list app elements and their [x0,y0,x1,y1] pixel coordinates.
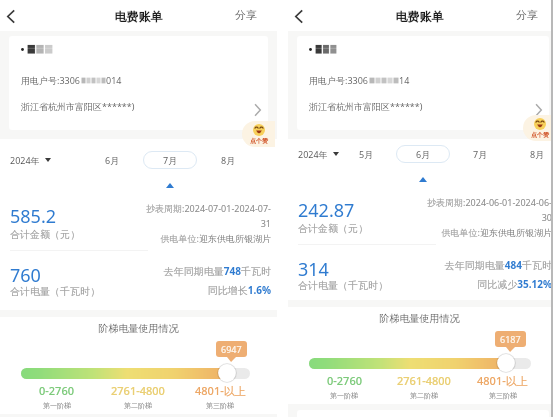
staticText: 分享 [235,8,257,22]
staticText: 用电户号:3306 [21,74,81,86]
staticText: 第三阶梯 [206,401,234,410]
staticText: 合计电量（千瓦时） [298,279,388,292]
button[interactable]: Usage level [496,353,516,373]
button[interactable]: 7月 [143,151,197,169]
staticText: 4801-以上 [477,373,528,388]
staticText: 分享 [516,8,538,22]
staticText: 6月 [416,148,431,160]
button[interactable]: 7月 [466,145,494,163]
staticText: 6月 [105,154,120,166]
button[interactable]: Back [2,7,20,25]
button[interactable]: 分享 [228,5,264,25]
staticText: 用电户号:3306 [309,74,369,86]
staticText: 第一阶梯 [43,401,71,410]
staticText: 点个赞 [250,137,268,145]
staticText: 4801-以上 [195,383,246,398]
button[interactable]: 6月 [396,145,450,163]
staticText: 浙江省杭州市富阳区******) [21,100,135,112]
staticText: 242.87 [298,198,355,223]
staticText: 6947 [221,343,242,355]
staticText: 供电单位:迎东供电所银湖片 [441,226,551,238]
button[interactable]: 用电户号:3306 [297,36,549,130]
staticText: 第二阶梯 [410,391,438,400]
staticText: 2761-4800 [111,383,165,398]
staticText: 供电单位:迎东供电所银湖片 [160,232,271,244]
staticText: 去年同期电量748千瓦时 [163,264,271,278]
button[interactable]: 2024年 [298,146,339,162]
staticText: 14 [399,74,410,86]
staticText: 30 [541,211,551,223]
staticText: 第三阶梯 [489,391,517,400]
staticText: 去年同期电量484千瓦时 [444,258,551,272]
staticText: 阶梯电量使用情况 [288,312,551,325]
staticText: 点个赞 [531,131,549,139]
button[interactable]: 8月 [523,145,551,163]
staticText: 第二阶梯 [124,401,152,410]
staticText: 7月 [163,154,178,166]
staticText: 760 [10,263,41,288]
staticText: 同比增长1.6% [207,283,271,297]
button[interactable]: 5月 [352,145,380,163]
button[interactable]: Back [290,7,308,25]
staticText: 31 [260,217,271,229]
staticText: 电费账单 [288,9,551,24]
button[interactable]: 8月 [214,151,242,169]
button[interactable]: 分享 [509,5,545,25]
staticText: 第一阶梯 [330,391,358,400]
staticText: 7月 [473,148,488,160]
staticText: 014 [106,74,122,86]
button[interactable]: Usage level [217,363,237,383]
staticText: 6187 [500,333,521,345]
button[interactable]: 用电户号:3306 [9,36,268,130]
staticText: 抄表周期:2024-06-01-2024-06- [427,196,551,208]
button[interactable]: 2024年 [10,152,51,168]
staticText: 2024年 [298,148,328,160]
staticText: 585.2 [10,204,57,229]
staticText: 8月 [530,148,545,160]
staticText: 8月 [221,154,236,166]
button[interactable]: Like this bill [242,121,275,147]
staticText: 0-2760 [327,373,362,388]
staticText: 314 [298,257,329,282]
staticText: 合计金额（元） [298,222,368,235]
staticText: 抄表周期:2024-07-01-2024-07- [146,202,271,214]
staticText: 2024年 [10,154,40,166]
staticText: 阶梯电量使用情况 [0,322,277,335]
staticText: 2761-4800 [397,373,451,388]
button[interactable]: Like this bill [523,115,551,141]
staticText: 电费账单 [0,9,277,24]
staticText: 同比减少35.12% [477,277,551,291]
staticText: 浙江省杭州市富阳区******) [309,100,423,112]
button[interactable]: 6月 [98,151,126,169]
staticText: 0-2760 [39,383,74,398]
staticText: 合计金额（元） [10,228,80,241]
staticText: 5月 [359,148,374,160]
staticText: 合计电量（千瓦时） [10,285,100,298]
